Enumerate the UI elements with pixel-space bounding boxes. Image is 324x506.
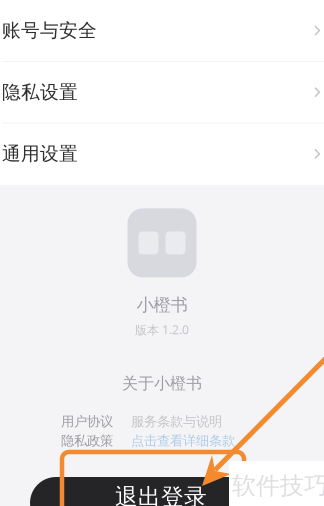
- button[interactable]: 退出登录: [30, 477, 292, 506]
- staticText: 用户协议: [61, 413, 113, 430]
- staticText: 版本 1.2.0: [135, 322, 189, 338]
- staticText: 账号与安全: [2, 19, 97, 42]
- button[interactable]: 账号与安全: [0, 0, 324, 61]
- button[interactable]: 通用设置: [0, 123, 324, 184]
- staticText: 隐私政策: [61, 433, 113, 449]
- staticText: 退出登录: [115, 483, 207, 506]
- button[interactable]: 隐私设置: [0, 62, 324, 123]
- staticText: 软件技巧: [232, 471, 324, 500]
- staticText: 小橙书: [136, 294, 187, 316]
- staticText: 点击查看详细条款: [131, 433, 235, 449]
- button[interactable]: 点击查看详细条款: [131, 433, 235, 449]
- staticText: 通用设置: [2, 142, 78, 165]
- staticText: 服务条款与说明: [131, 413, 222, 430]
- staticText: 关于小橙书: [122, 374, 202, 393]
- button[interactable]: 关于小橙书: [114, 371, 210, 396]
- staticText: 隐私设置: [2, 81, 78, 104]
